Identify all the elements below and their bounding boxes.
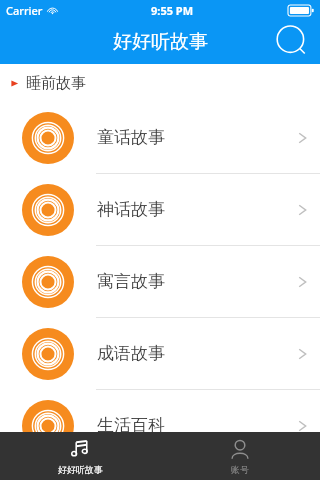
button[interactable]: 好好听故事 — [0, 432, 160, 480]
staticText: 儿童故事 — [97, 462, 295, 480]
staticText: 成语故事 — [97, 343, 295, 364]
staticText: 生活百科 — [97, 415, 295, 436]
staticText: 神话故事 — [97, 199, 295, 220]
button[interactable]: Search — [272, 22, 312, 62]
staticText: 睡前故事 — [26, 74, 86, 93]
button[interactable]: 童话故事 — [0, 102, 320, 174]
staticText: 寓言故事 — [97, 271, 295, 292]
button[interactable]: 寓言故事 — [0, 246, 320, 318]
staticText: Carrier — [6, 3, 43, 18]
staticText: 账号 — [231, 464, 249, 475]
staticText: 童话故事 — [97, 127, 295, 148]
staticText: 好好听故事 — [113, 30, 208, 54]
button[interactable]: 儿童故事 — [0, 462, 320, 480]
button[interactable]: 生活百科 — [0, 390, 320, 462]
button[interactable]: 成语故事 — [0, 318, 320, 390]
staticText: 9:55 PM — [151, 3, 194, 18]
staticText: 好好听故事 — [58, 464, 103, 475]
button[interactable]: 账号 — [160, 432, 320, 480]
button[interactable]: 神话故事 — [0, 174, 320, 246]
